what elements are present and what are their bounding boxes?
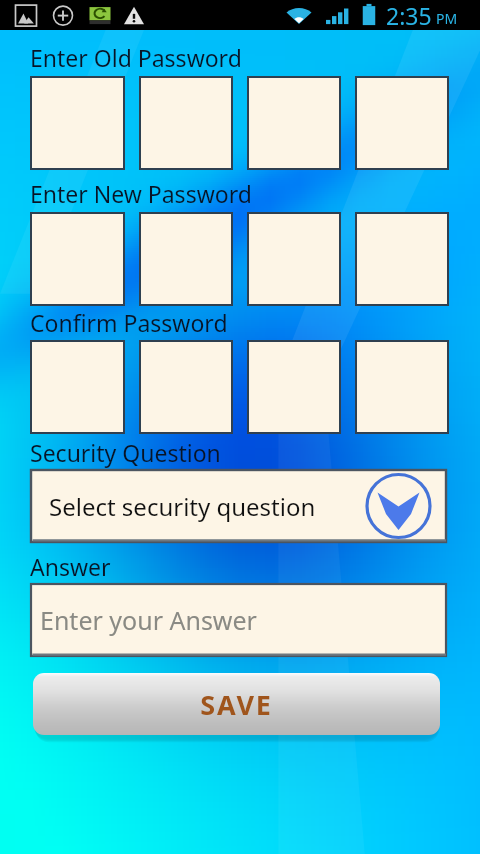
button[interactable]: Select security question: [31, 470, 446, 542]
button[interactable]: Password digit: [140, 213, 232, 305]
staticText: 2:35: [386, 0, 432, 30]
button[interactable]: SAVE: [33, 673, 440, 735]
staticText: Answer: [30, 551, 111, 582]
button[interactable]: Password digit: [356, 341, 448, 433]
staticText: Enter New Password: [30, 178, 252, 209]
staticText: Security Question: [30, 437, 221, 468]
button[interactable]: Password digit: [248, 213, 340, 305]
staticText: Enter Old Password: [30, 42, 242, 73]
button[interactable]: Password digit: [140, 341, 232, 433]
button[interactable]: Password digit: [31, 77, 124, 169]
staticText: Select security question: [49, 490, 316, 523]
button[interactable]: Password digit: [356, 213, 448, 305]
button[interactable]: Password digit: [31, 213, 124, 305]
button[interactable]: Password digit: [248, 77, 340, 169]
button[interactable]: Password digit: [356, 77, 448, 169]
button[interactable]: Password digit: [140, 77, 232, 169]
button[interactable]: Password digit: [31, 341, 124, 433]
staticText: PM: [436, 9, 458, 28]
staticText: SAVE: [200, 686, 273, 723]
staticText: Confirm Password: [30, 307, 228, 338]
staticText: Enter your Answer: [40, 603, 257, 637]
button[interactable]: Password digit: [248, 341, 340, 433]
button[interactable]: Enter your Answer: [31, 584, 446, 656]
